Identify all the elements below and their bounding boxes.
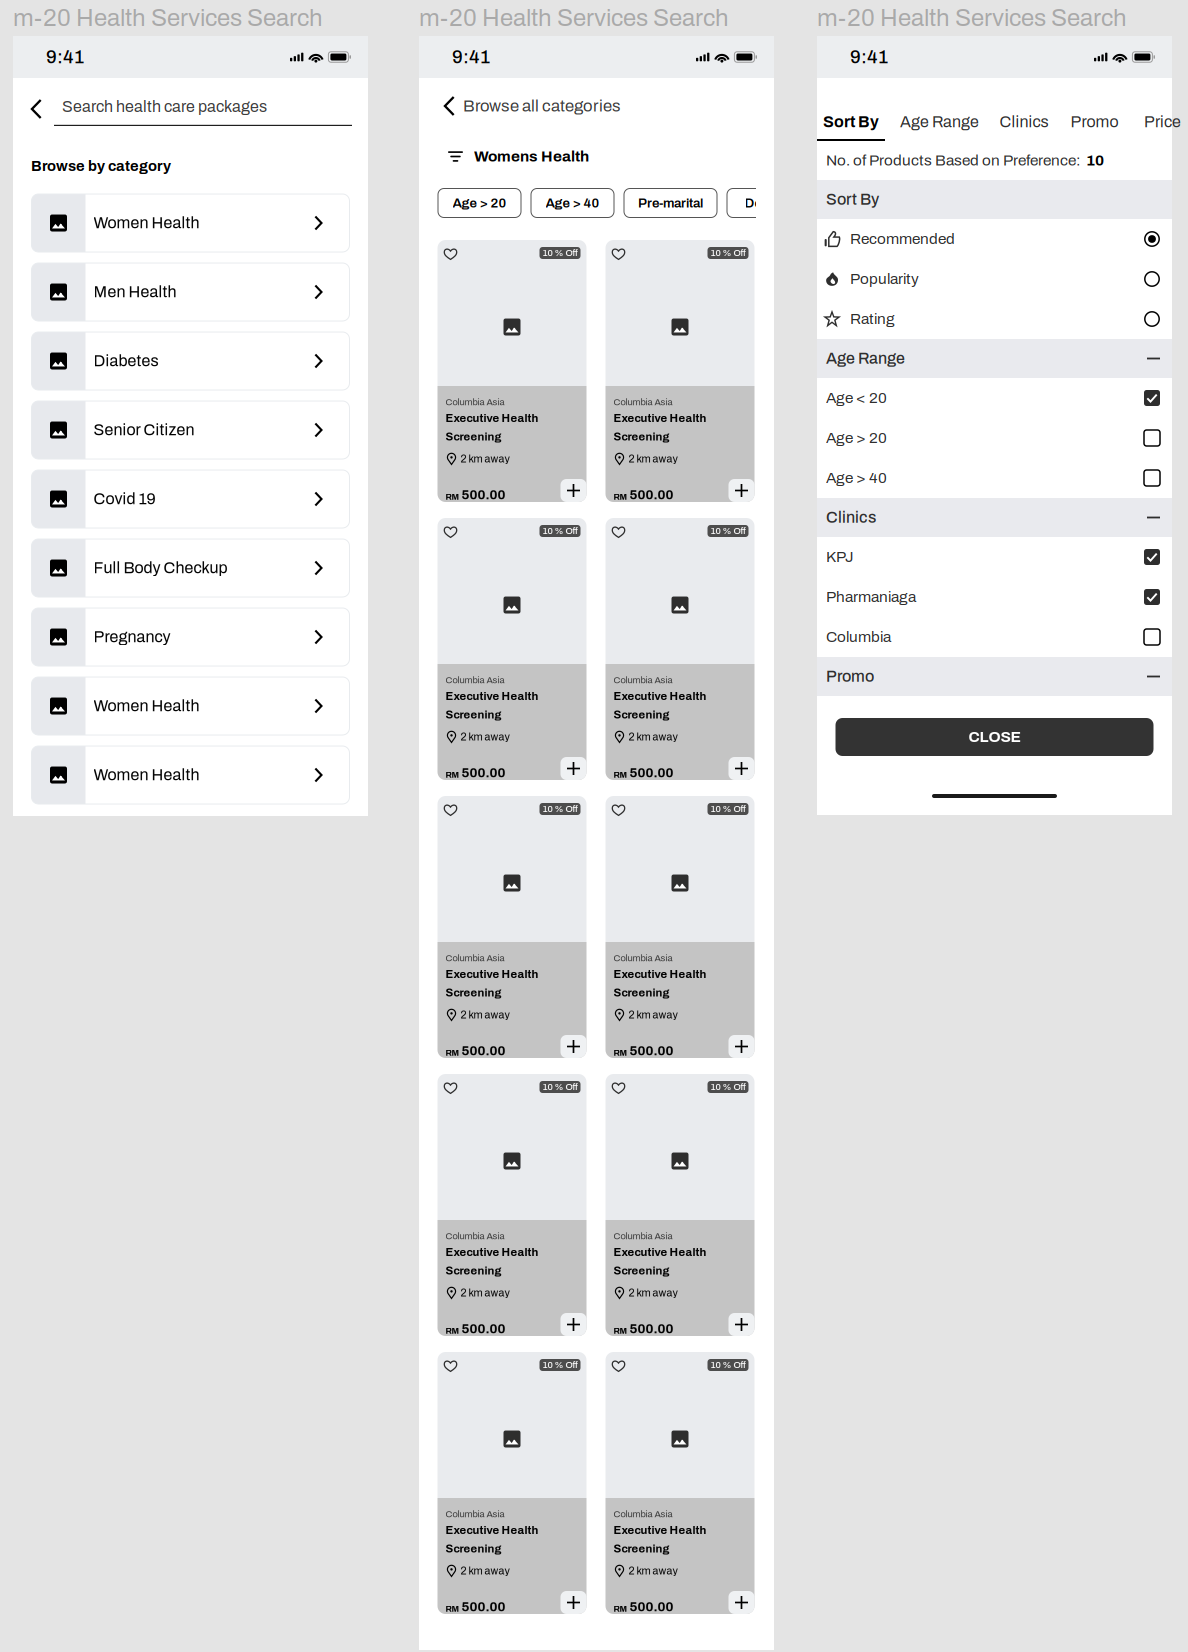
button[interactable]: Clinics [994,105,1054,141]
button[interactable]: Covid 19 [31,470,349,528]
staticText: 10 % Off [542,248,577,258]
button[interactable]: Age > 40 [817,458,1172,498]
button[interactable]: Favourite [443,525,457,539]
staticText: Age Range [826,350,905,367]
staticText: Screening [613,430,669,443]
button[interactable]: Back [31,98,42,120]
button[interactable]: Dengue [727,188,810,217]
staticText: Executive Health [445,690,538,702]
staticText: Age > 20 [452,196,506,210]
button[interactable]: Senior Citizen [31,401,349,459]
staticText: Columbia [826,629,891,645]
button[interactable]: Age > 20 [438,188,521,217]
button[interactable]: Recommended [817,219,1172,259]
button[interactable]: Women Health [31,194,349,252]
button[interactable]: Favourite [443,1359,457,1373]
button[interactable]: Age < 20 [817,378,1172,418]
button[interactable]: Pregnancy [31,608,349,666]
staticText: Age Range [900,113,979,131]
button[interactable]: Popularity [817,259,1172,299]
staticText: Columbia Asia [613,953,672,963]
staticText: 2 km away [460,453,509,465]
button[interactable]: Women Health [31,746,349,804]
button[interactable]: Sort By [817,105,885,141]
staticText: Age > 40 [826,470,887,486]
staticText: Columbia Asia [445,675,504,685]
button[interactable]: Add to cart [728,479,754,502]
button[interactable]: Back [444,95,455,117]
button[interactable]: Age > 40 [531,188,614,217]
button[interactable]: Add to cart [728,1313,754,1336]
button[interactable]: Add to cart [728,1591,754,1614]
button[interactable]: Rating [817,299,1172,339]
staticText: Executive Health [613,690,706,702]
button[interactable]: Add to cart [560,479,586,502]
staticText: m-20 Health Services Search [419,5,729,31]
staticText: Columbia Asia [613,1231,672,1241]
button[interactable]: Price [1135,105,1188,141]
button[interactable]: KPJ [817,537,1172,577]
staticText: Screening [613,1264,669,1277]
button[interactable]: Age Range [895,105,984,141]
staticText: Sort By [826,191,879,208]
button[interactable]: Men Health [31,263,349,321]
staticText: No. of Products Based on Preference: [826,152,1081,169]
button[interactable]: Diabetes [31,332,349,390]
button[interactable]: Promo [1064,105,1125,141]
staticText: Pregnancy [93,628,170,646]
staticText: Screening [445,1542,501,1555]
button[interactable]: Add to cart [560,757,586,780]
staticText: Covid 19 [93,490,155,508]
button[interactable]: Add to cart [560,1313,586,1336]
button[interactable]: Add to cart [560,1035,586,1058]
button[interactable]: Favourite [443,247,457,261]
staticText: Executive Health [445,1246,538,1258]
staticText: Pre-marital [638,196,703,210]
button[interactable]: Columbia [817,617,1172,657]
button[interactable]: Full Body Checkup [31,539,349,597]
staticText: RM [445,1326,459,1335]
staticText: 10 % Off [710,1082,745,1092]
button[interactable]: Women Health [31,677,349,735]
staticText: Columbia Asia [445,397,504,407]
staticText: 2 km away [628,731,677,743]
staticText: Women Health [93,766,199,784]
staticText: 2 km away [628,1287,677,1299]
button[interactable]: Favourite [611,525,625,539]
button[interactable]: Add to cart [560,1591,586,1614]
staticText: Columbia Asia [445,1509,504,1519]
staticText: Price [1144,113,1181,131]
button[interactable]: Add to cart [728,1035,754,1058]
staticText: 500.00 [461,1321,505,1336]
staticText: Sort By [823,113,879,131]
staticText: 10 % Off [710,1360,745,1370]
staticText: Clinics [999,113,1048,131]
staticText: Diabetes [93,352,158,370]
button[interactable]: Favourite [611,803,625,817]
button[interactable]: Favourite [611,1081,625,1095]
button[interactable]: Add to cart [728,757,754,780]
staticText: RM [445,492,459,501]
staticText: Screening [613,708,669,721]
staticText: 500.00 [461,1599,505,1614]
staticText: RM [613,1048,627,1057]
staticText: 10 % Off [542,526,577,536]
staticText: 2 km away [460,731,509,743]
button[interactable]: Favourite [443,1081,457,1095]
staticText: Screening [445,1264,501,1277]
button[interactable]: Age > 20 [817,418,1172,458]
staticText: Rating [850,311,895,327]
staticText: 500.00 [461,1043,505,1058]
button[interactable]: Pre-marital [624,188,717,217]
button[interactable]: Pharmaniaga [817,577,1172,617]
staticText: RM [445,770,459,779]
staticText: 500.00 [629,765,673,780]
button[interactable]: CLOSE [835,718,1153,756]
staticText: Executive Health [613,1524,706,1536]
button[interactable]: Favourite [611,247,625,261]
button[interactable]: Favourite [443,803,457,817]
staticText: 10 % Off [710,248,745,258]
staticText: 500.00 [461,765,505,780]
staticText: Promo [1070,113,1118,131]
button[interactable]: Favourite [611,1359,625,1373]
